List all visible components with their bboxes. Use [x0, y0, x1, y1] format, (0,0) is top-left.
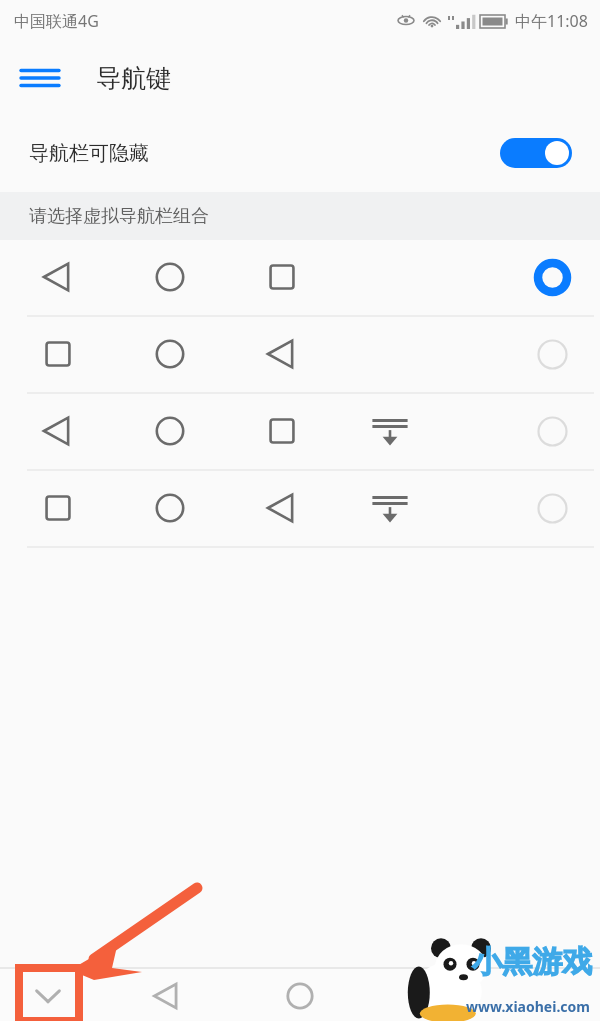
button[interactable]: Selected option: [537, 262, 568, 293]
button[interactable]: Back: [146, 975, 188, 1017]
staticText: 小黑游戏: [472, 943, 592, 981]
button[interactable]: Select option: [0, 471, 600, 546]
button[interactable]: 导航栏可隐藏: [0, 114, 600, 192]
button[interactable]: Select option: [537, 416, 568, 447]
button[interactable]: Select option: [0, 394, 600, 469]
staticText: 中国联通4G: [14, 10, 99, 32]
staticText: 中午11:08: [515, 10, 588, 32]
button[interactable]: Selected option: [0, 240, 600, 315]
button[interactable]: Select option: [537, 339, 568, 370]
button[interactable]: Menu: [14, 52, 66, 104]
button[interactable]: Home: [279, 975, 321, 1017]
button[interactable]: Select option: [0, 317, 600, 392]
staticText: 导航键: [96, 63, 171, 94]
staticText: www.xiaohei.com: [466, 997, 590, 1016]
button[interactable]: Select option: [537, 493, 568, 524]
staticText: 请选择虚拟导航栏组合: [29, 205, 209, 228]
staticText: 导航栏可隐藏: [29, 141, 149, 166]
button[interactable]: Hide navigation bar: [27, 975, 69, 1017]
